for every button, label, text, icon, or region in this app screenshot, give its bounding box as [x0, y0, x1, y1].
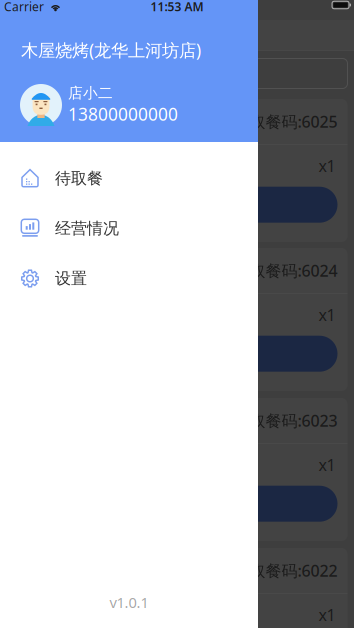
- staticText: x1: [318, 155, 335, 176]
- staticText: 取餐码:6024: [249, 260, 337, 281]
- staticText: Carrier: [4, 0, 44, 14]
- staticText: 店小二: [68, 84, 113, 102]
- staticText: x1: [318, 454, 335, 475]
- button[interactable]: 待取餐: [0, 153, 258, 203]
- staticText: 木屋烧烤(龙华上河坊店): [21, 38, 201, 61]
- staticText: x1: [318, 604, 335, 625]
- button[interactable]: 经营情况: [0, 203, 258, 253]
- staticText: 经营情况: [55, 219, 119, 238]
- staticText: x1: [318, 304, 335, 325]
- staticText: 取餐码:6023: [249, 410, 337, 431]
- staticText: 取餐码:6022: [249, 560, 337, 581]
- staticText: 设置: [55, 269, 87, 288]
- staticText: 取餐码:6025: [249, 111, 337, 132]
- staticText: 11:53 AM: [150, 0, 203, 14]
- staticText: 待取餐: [55, 169, 103, 188]
- button[interactable]: 设置: [0, 253, 258, 303]
- staticText: v1.0.1: [109, 592, 148, 612]
- staticText: 13800000000: [68, 102, 178, 125]
